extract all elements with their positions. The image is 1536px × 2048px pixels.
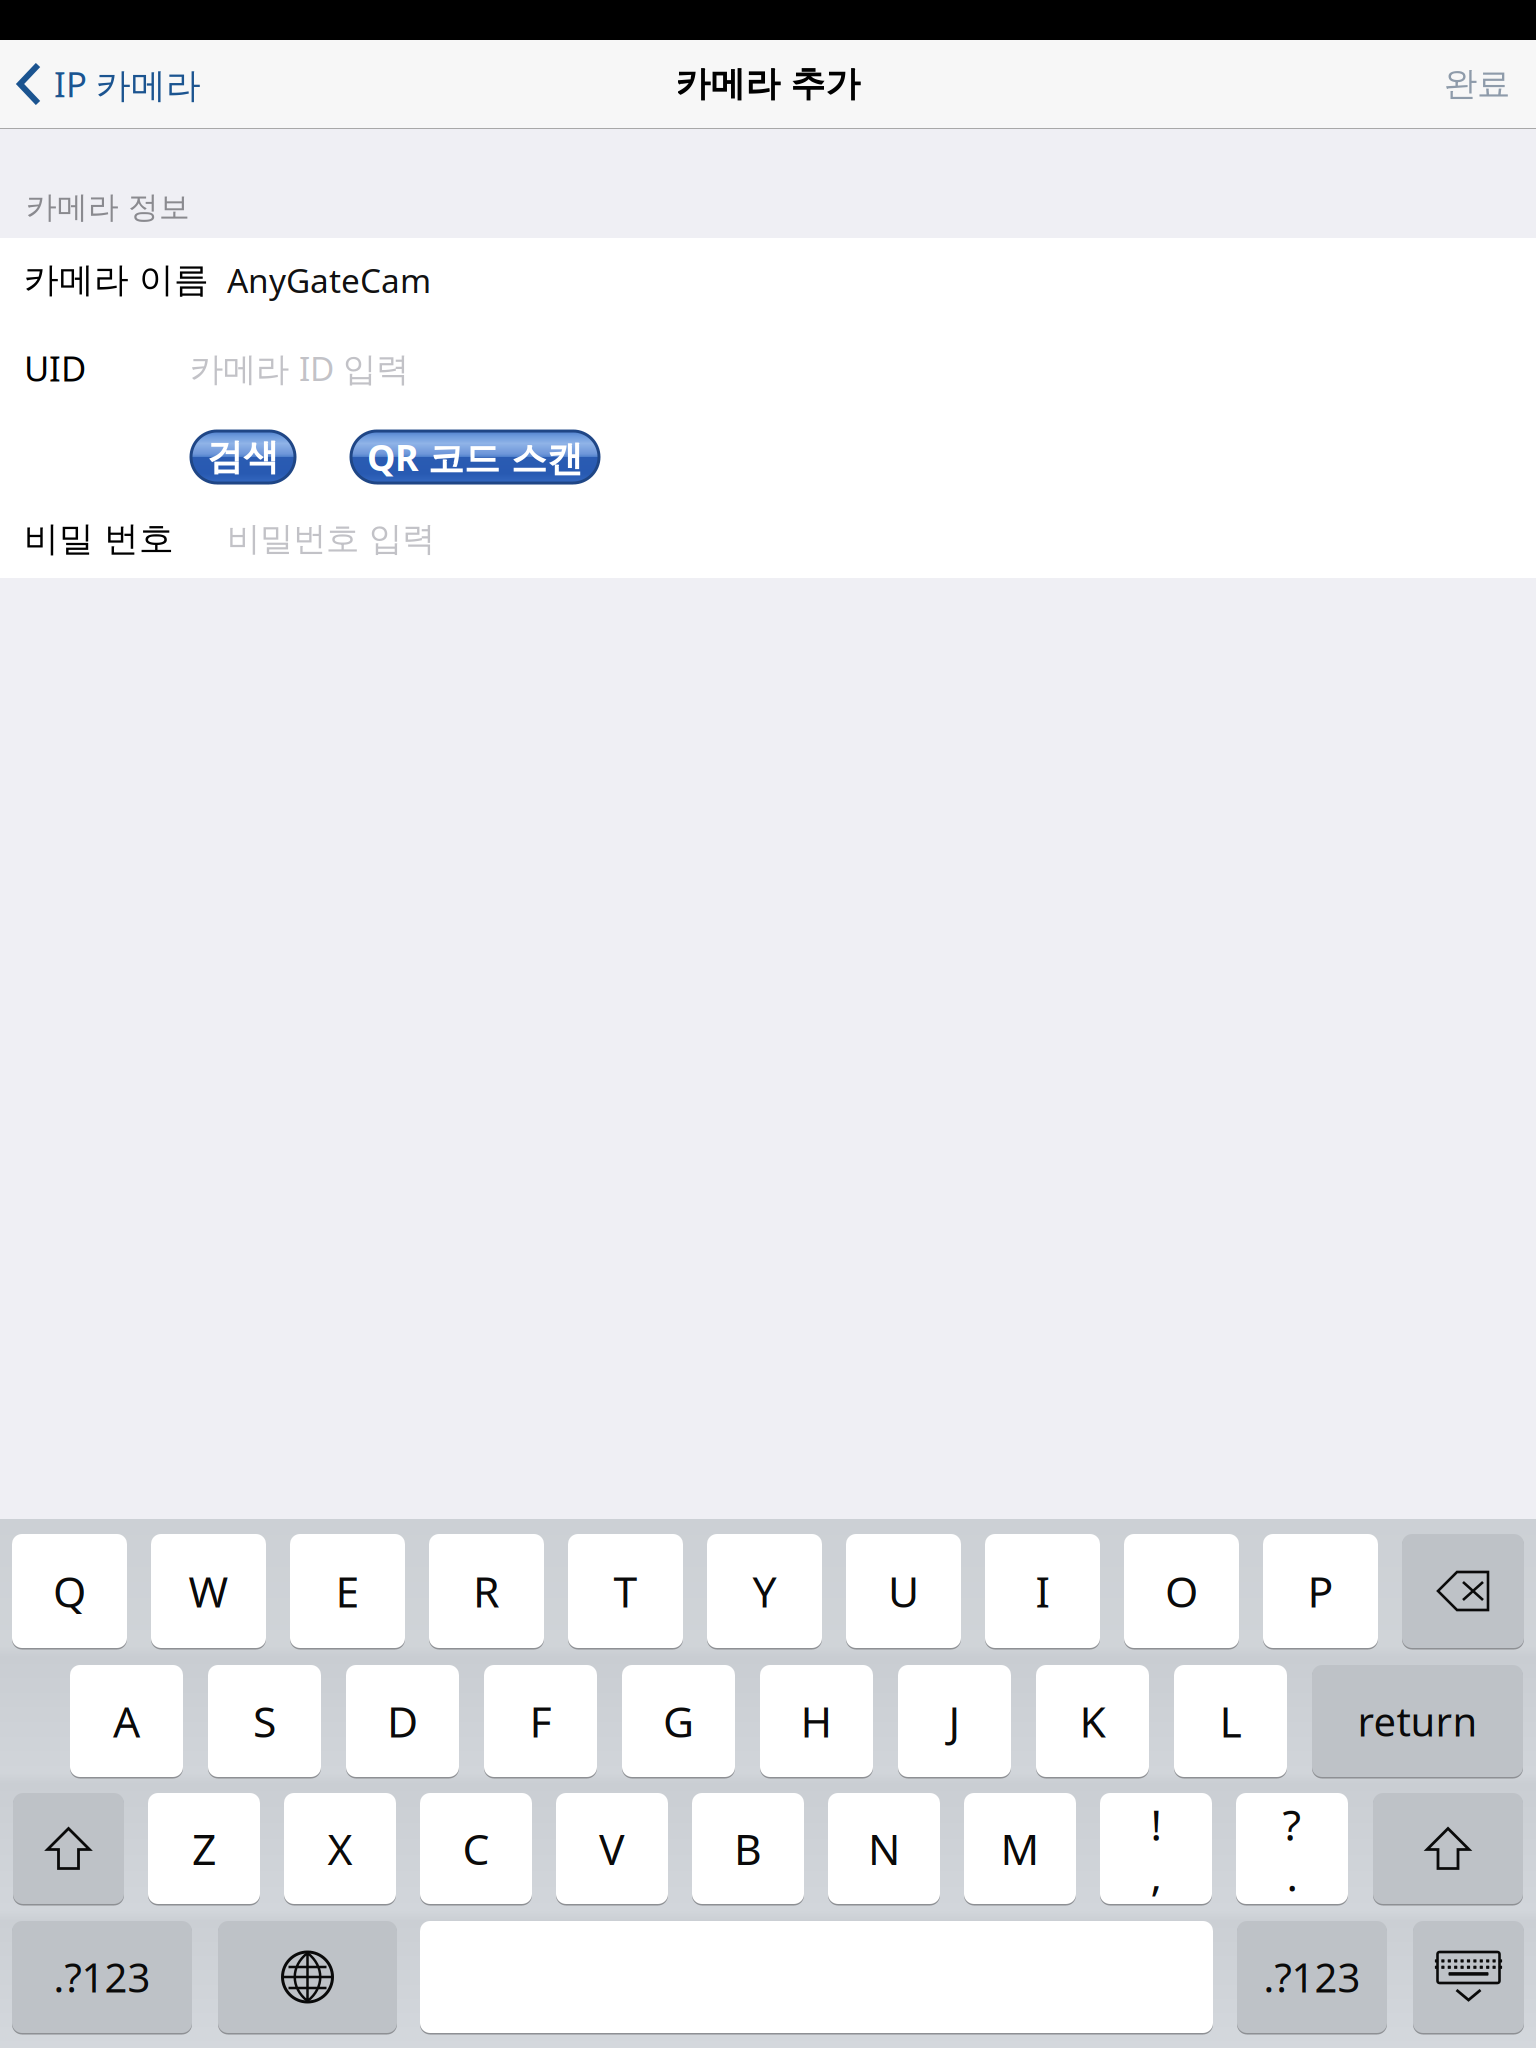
button[interactable]: D — [346, 1663, 459, 1778]
staticText: IP 카메라 — [54, 61, 201, 107]
button[interactable]: ! — [1100, 1791, 1212, 1905]
button[interactable]: Y — [707, 1532, 822, 1649]
staticText: U — [888, 1563, 919, 1619]
staticText: , — [1150, 1846, 1161, 1903]
staticText: 카메라 이름 — [24, 259, 209, 301]
button[interactable]: A — [70, 1663, 183, 1778]
staticText: UID — [24, 345, 86, 391]
staticText: I — [1035, 1563, 1049, 1619]
staticText: AnyGateCam — [227, 258, 431, 302]
staticText: B — [734, 1820, 762, 1877]
button[interactable]: Shift — [1373, 1791, 1523, 1905]
button[interactable]: return — [1312, 1663, 1523, 1778]
staticText: L — [1219, 1693, 1241, 1749]
button[interactable]: T — [568, 1532, 683, 1649]
button[interactable]: H — [760, 1663, 873, 1778]
staticText: Y — [752, 1563, 776, 1619]
staticText: Q — [53, 1563, 86, 1619]
staticText: S — [253, 1693, 276, 1749]
button[interactable]: 완료 — [1414, 40, 1536, 128]
staticText: 검색 — [207, 435, 279, 479]
button[interactable]: Z — [148, 1791, 260, 1905]
staticText: H — [800, 1693, 832, 1749]
button[interactable]: V — [556, 1791, 668, 1905]
button[interactable]: QR 코드 스캔 — [351, 431, 599, 483]
button[interactable]: L — [1174, 1663, 1287, 1778]
staticText: .?123 — [53, 1950, 150, 2003]
button[interactable]: M — [964, 1791, 1076, 1905]
button[interactable]: X — [284, 1791, 396, 1905]
staticText: O — [1165, 1563, 1198, 1619]
staticText: R — [473, 1563, 500, 1619]
staticText: ! — [1150, 1796, 1161, 1852]
button[interactable]: Q — [12, 1532, 127, 1649]
button[interactable]: Shift — [13, 1791, 124, 1905]
button[interactable]: C — [420, 1791, 532, 1905]
button[interactable]: E — [290, 1532, 405, 1649]
staticText: G — [663, 1693, 694, 1749]
button[interactable]: ? — [1236, 1791, 1348, 1905]
staticText: . — [1286, 1846, 1297, 1903]
staticText: E — [335, 1563, 359, 1619]
staticText: ? — [1282, 1796, 1301, 1852]
button[interactable]: U — [846, 1532, 961, 1649]
button[interactable]: N — [828, 1791, 940, 1905]
staticText: X — [327, 1820, 352, 1877]
staticText: W — [188, 1563, 228, 1619]
staticText: K — [1079, 1693, 1105, 1749]
button[interactable]: 검색 — [191, 431, 295, 483]
staticText: A — [113, 1693, 140, 1749]
staticText: V — [599, 1820, 625, 1877]
button[interactable]: .?123 — [12, 1919, 192, 2034]
staticText: 완료 — [1444, 63, 1510, 104]
staticText: N — [868, 1820, 900, 1877]
button[interactable]: P — [1263, 1532, 1378, 1649]
staticText: F — [529, 1693, 551, 1749]
button[interactable]: Space — [420, 1919, 1213, 2034]
staticText: P — [1307, 1563, 1333, 1619]
staticText: J — [948, 1693, 960, 1749]
staticText: 비밀번호 입력 — [227, 518, 435, 559]
button[interactable]: B — [692, 1791, 804, 1905]
button[interactable]: Delete — [1402, 1532, 1524, 1649]
button[interactable]: W — [151, 1532, 266, 1649]
staticText: D — [387, 1693, 418, 1749]
staticText: 카메라 ID 입력 — [190, 346, 409, 390]
staticText: .?123 — [1263, 1950, 1360, 2003]
button[interactable]: G — [622, 1663, 735, 1778]
staticText: 비밀 번호 — [24, 518, 174, 560]
staticText: Z — [192, 1820, 216, 1877]
staticText: 카메라 정보 — [26, 188, 190, 226]
button[interactable]: I — [985, 1532, 1100, 1649]
button[interactable]: S — [208, 1663, 321, 1778]
button[interactable]: Hide keyboard — [1413, 1919, 1524, 2034]
button[interactable]: IP 카메라 — [0, 40, 217, 128]
button[interactable]: R — [429, 1532, 544, 1649]
staticText: C — [462, 1820, 489, 1877]
button[interactable]: .?123 — [1237, 1919, 1387, 2034]
button[interactable]: O — [1124, 1532, 1239, 1649]
staticText: QR 코드 스캔 — [367, 433, 583, 481]
button[interactable]: Next keyboard — [218, 1919, 397, 2034]
button[interactable]: J — [898, 1663, 1011, 1778]
staticText: M — [1000, 1820, 1039, 1877]
button[interactable]: K — [1036, 1663, 1149, 1778]
staticText: T — [613, 1563, 637, 1619]
button[interactable]: F — [484, 1663, 597, 1778]
staticText: return — [1357, 1694, 1477, 1747]
staticText: 카메라 추가 — [675, 63, 860, 105]
